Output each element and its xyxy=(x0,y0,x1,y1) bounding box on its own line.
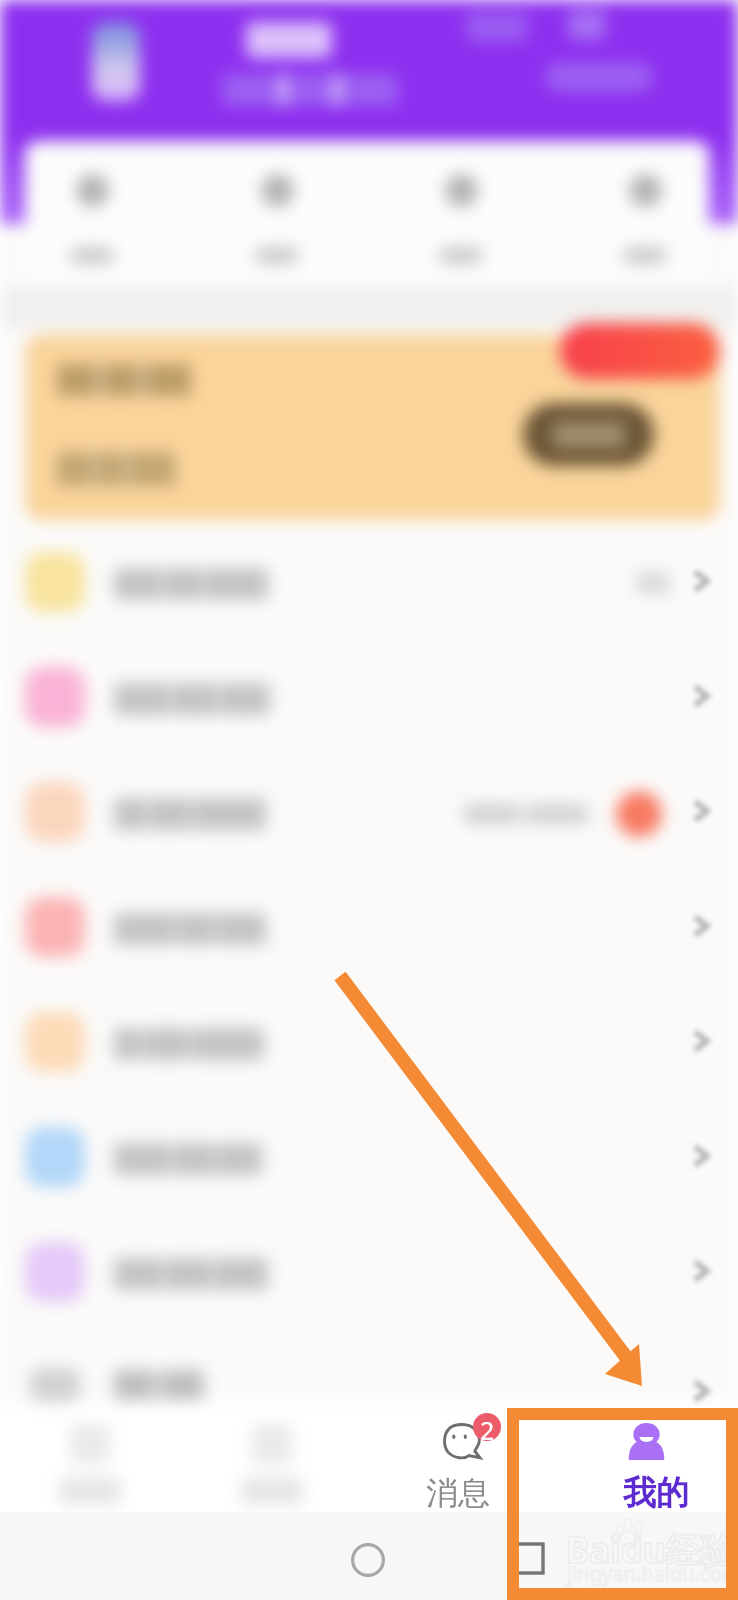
button[interactable]: Recents xyxy=(515,1544,543,1573)
button[interactable]: Home xyxy=(351,1543,385,1577)
button[interactable]: 我的 xyxy=(585,1410,707,1512)
button[interactable]: 2 xyxy=(400,1410,522,1512)
staticText: Baidu经验 xyxy=(566,1526,736,1574)
staticText: 我的 xyxy=(623,1472,689,1514)
staticText: 消息 xyxy=(426,1473,490,1513)
staticText: jingyan.baidu.com xyxy=(567,1560,738,1587)
staticText: 2 xyxy=(480,1413,495,1441)
